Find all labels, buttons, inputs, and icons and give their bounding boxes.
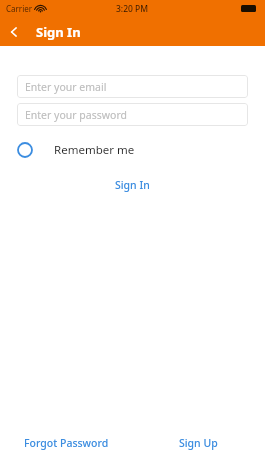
button[interactable]: Enter your email — [17, 75, 248, 98]
staticText: Forgot Password — [24, 436, 109, 450]
staticText: Sign In — [36, 23, 81, 41]
staticText: 3:20 PM — [116, 3, 149, 15]
staticText: Remember me — [54, 142, 135, 158]
button[interactable]: Sign In — [105, 175, 160, 195]
staticText: Sign Up — [179, 436, 218, 450]
button[interactable]: Back — [0, 18, 28, 46]
staticText: Carrier — [6, 3, 33, 14]
staticText: Enter your password — [25, 108, 127, 122]
button[interactable]: Enter your password — [17, 103, 248, 126]
button[interactable]: Forgot Password — [18, 434, 115, 452]
button[interactable]: Remember me — [17, 137, 135, 163]
button[interactable]: Sign Up — [173, 434, 224, 452]
staticText: Enter your email — [25, 80, 107, 94]
staticText: Sign In — [115, 178, 150, 192]
